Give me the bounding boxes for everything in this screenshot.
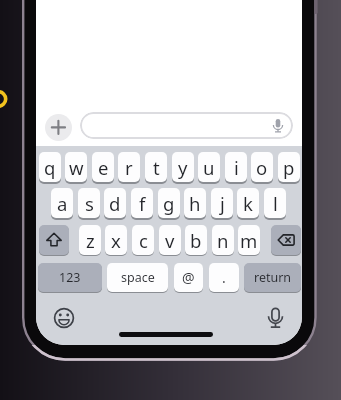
button[interactable]	[52, 306, 76, 330]
staticText: return	[254, 269, 292, 286]
button[interactable]: j	[211, 188, 233, 218]
button[interactable]: e	[92, 152, 114, 182]
staticText: @	[182, 268, 195, 287]
staticText: o	[256, 155, 268, 180]
staticText: n	[217, 228, 229, 253]
staticText: q	[44, 155, 56, 180]
staticText: j	[220, 191, 225, 216]
button[interactable]: b	[185, 225, 207, 255]
button[interactable]: @	[174, 263, 203, 292]
button[interactable]	[45, 114, 72, 141]
button[interactable]: k	[237, 188, 259, 218]
button[interactable]: z	[79, 225, 101, 255]
button[interactable]: c	[132, 225, 154, 255]
staticText: l	[273, 191, 278, 216]
button[interactable]: p	[278, 152, 300, 182]
button[interactable]: q	[39, 152, 61, 182]
staticText: s	[85, 191, 94, 216]
button[interactable]	[39, 225, 69, 255]
staticText: e	[98, 155, 109, 180]
button[interactable]: o	[251, 152, 273, 182]
staticText: c	[139, 228, 148, 253]
button[interactable]: l	[264, 188, 286, 218]
staticText: m	[240, 228, 258, 253]
staticText: t	[153, 155, 160, 180]
staticText: w	[69, 155, 84, 180]
staticText: a	[57, 191, 68, 216]
staticText: x	[111, 228, 121, 253]
button[interactable]: f	[131, 188, 153, 218]
button[interactable]: v	[159, 225, 181, 255]
button[interactable]: s	[78, 188, 100, 218]
staticText: h	[189, 191, 201, 216]
staticText: .	[222, 268, 226, 287]
staticText: 123	[59, 269, 81, 286]
button[interactable]: h	[184, 188, 206, 218]
staticText: b	[190, 228, 202, 253]
button[interactable]: 123	[38, 263, 102, 292]
staticText: p	[283, 155, 295, 180]
staticText: d	[109, 191, 121, 216]
button[interactable]: i	[225, 152, 247, 182]
staticText: u	[203, 155, 215, 180]
staticText: g	[163, 191, 175, 216]
staticText: space	[121, 269, 155, 286]
button[interactable]	[271, 225, 301, 255]
button[interactable]: m	[238, 225, 260, 255]
button[interactable]: y	[172, 152, 194, 182]
button[interactable]: return	[244, 263, 301, 292]
button[interactable]	[80, 112, 293, 139]
staticText: y	[178, 155, 188, 180]
button[interactable]: x	[105, 225, 127, 255]
button[interactable]: d	[104, 188, 126, 218]
button[interactable]: g	[158, 188, 180, 218]
staticText: k	[243, 191, 253, 216]
button[interactable]: w	[65, 152, 87, 182]
button[interactable]: r	[118, 152, 140, 182]
button[interactable]: .	[209, 263, 239, 292]
button[interactable]: t	[145, 152, 167, 182]
button[interactable]: n	[212, 225, 234, 255]
staticText: z	[86, 228, 95, 253]
button[interactable]	[263, 306, 288, 333]
button[interactable]: space	[107, 263, 168, 292]
staticText: f	[139, 191, 146, 216]
button[interactable]: u	[198, 152, 220, 182]
staticText: r	[125, 155, 133, 180]
staticText: i	[234, 155, 239, 180]
button[interactable]: a	[51, 188, 73, 218]
staticText: v	[165, 228, 175, 253]
